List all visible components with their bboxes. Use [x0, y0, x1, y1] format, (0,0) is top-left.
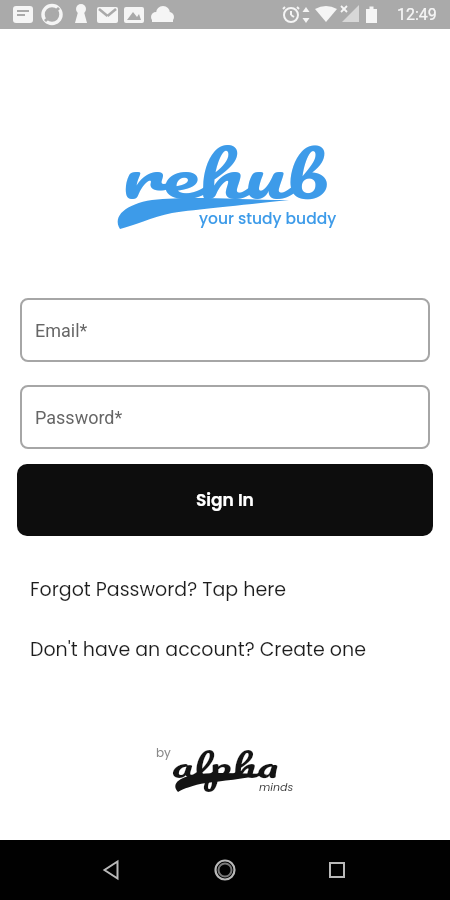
- staticText: minds: [259, 779, 294, 794]
- button[interactable]: [201, 846, 249, 894]
- button[interactable]: by: [0, 0, 450, 58]
- button[interactable]: [313, 846, 361, 894]
- staticText: rehub: [121, 125, 330, 225]
- staticText: Sign In: [196, 488, 254, 512]
- button[interactable]: Sign In: [17, 464, 433, 536]
- staticText: Password*: [35, 407, 123, 428]
- staticText: by: [156, 744, 171, 761]
- button[interactable]: Password*: [20, 385, 430, 449]
- staticText: 12:49: [397, 5, 437, 24]
- staticText: your study buddy: [199, 208, 337, 230]
- staticText: Email*: [35, 320, 88, 341]
- button[interactable]: [89, 846, 137, 894]
- button[interactable]: Email*: [20, 298, 430, 362]
- button[interactable]: Don't have an account? Create one: [30, 636, 366, 663]
- button[interactable]: Forgot Password? Tap here: [30, 576, 287, 603]
- staticText: alpha: [171, 738, 279, 792]
